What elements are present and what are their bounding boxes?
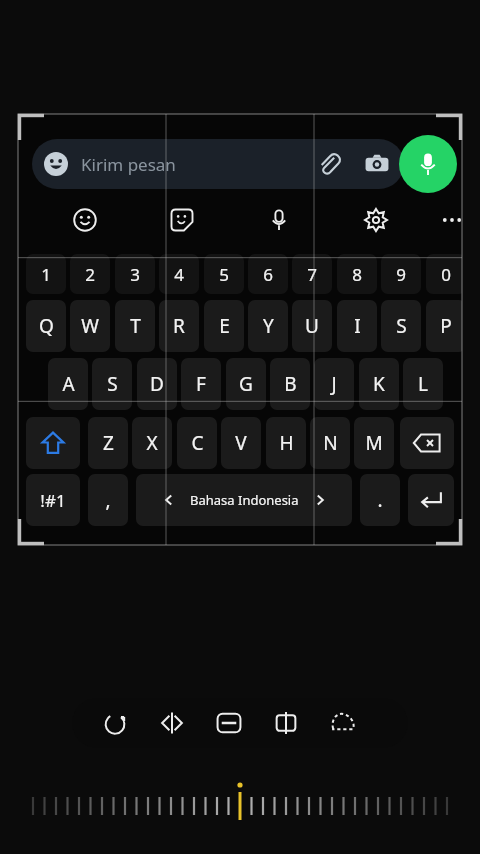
- staticText: Bahasa Indonesia: [190, 491, 299, 509]
- button[interactable]: 5: [204, 254, 244, 294]
- staticText: F: [196, 371, 206, 397]
- button[interactable]: 9: [381, 254, 421, 294]
- button[interactable]: M: [354, 417, 394, 469]
- staticText: .: [377, 487, 383, 513]
- staticText: G: [239, 371, 253, 397]
- button[interactable]: Z: [88, 417, 128, 469]
- button[interactable]: .: [360, 474, 400, 526]
- button[interactable]: 4: [159, 254, 199, 294]
- button[interactable]: !#1: [26, 474, 80, 526]
- button[interactable]: Camera: [364, 151, 390, 177]
- staticText: Kirim pesan: [81, 153, 176, 176]
- button[interactable]: S: [381, 300, 421, 352]
- staticText: Z: [103, 430, 114, 456]
- button[interactable]: F: [181, 358, 221, 410]
- staticText: 1: [41, 263, 51, 286]
- staticText: ,: [105, 487, 111, 513]
- button[interactable]: Q: [26, 300, 66, 352]
- staticText: N: [323, 430, 338, 456]
- button[interactable]: Flip vertical: [271, 708, 301, 738]
- button[interactable]: J: [314, 358, 354, 410]
- button[interactable]: S: [92, 358, 132, 410]
- button[interactable]: W: [70, 300, 110, 352]
- button[interactable]: V: [221, 417, 261, 469]
- staticText: S: [107, 371, 118, 397]
- button[interactable]: D: [137, 358, 177, 410]
- button[interactable]: 3: [115, 254, 155, 294]
- button[interactable]: C: [177, 417, 217, 469]
- button[interactable]: Emoji: [67, 202, 103, 238]
- button[interactable]: L: [403, 358, 443, 410]
- staticText: K: [373, 371, 385, 397]
- button[interactable]: Voice: [261, 202, 297, 238]
- button[interactable]: Backspace: [400, 417, 454, 469]
- button[interactable]: Rotate: [100, 708, 130, 738]
- button[interactable]: G: [226, 358, 266, 410]
- button[interactable]: H: [266, 417, 306, 469]
- button[interactable]: 2: [70, 254, 110, 294]
- button[interactable]: More: [434, 202, 462, 238]
- staticText: A: [62, 371, 75, 397]
- staticText: V: [235, 430, 247, 456]
- button[interactable]: Stickers: [164, 202, 200, 238]
- staticText: I: [354, 313, 361, 339]
- button[interactable]: T: [115, 300, 155, 352]
- button[interactable]: Shift: [26, 417, 80, 469]
- button[interactable]: ,: [88, 474, 128, 526]
- button[interactable]: 8: [337, 254, 377, 294]
- staticText: D: [150, 371, 164, 397]
- button[interactable]: Flip horizontal: [157, 708, 187, 738]
- staticText: S: [396, 313, 407, 339]
- button[interactable]: 7: [292, 254, 332, 294]
- staticText: 8: [352, 263, 362, 286]
- staticText: Y: [263, 313, 274, 339]
- staticText: W: [81, 313, 99, 339]
- button[interactable]: 0: [426, 254, 462, 294]
- button[interactable]: R: [159, 300, 199, 352]
- button[interactable]: B: [270, 358, 310, 410]
- staticText: R: [173, 313, 185, 339]
- staticText: P: [440, 313, 452, 339]
- button[interactable]: Free aspect: [214, 708, 244, 738]
- button[interactable]: I: [337, 300, 377, 352]
- button[interactable]: Bahasa Indonesia: [136, 474, 352, 526]
- staticText: B: [284, 371, 297, 397]
- staticText: 2: [85, 263, 95, 286]
- button[interactable]: 6: [248, 254, 288, 294]
- staticText: 7: [307, 263, 317, 286]
- button[interactable]: K: [359, 358, 399, 410]
- button[interactable]: Shape: [328, 708, 358, 738]
- staticText: !#1: [40, 489, 66, 512]
- staticText: 5: [219, 263, 229, 286]
- button[interactable]: [0, 780, 480, 830]
- button[interactable]: N: [310, 417, 350, 469]
- staticText: 3: [130, 263, 140, 286]
- button[interactable]: Record voice message: [399, 135, 457, 193]
- staticText: U: [305, 313, 319, 339]
- staticText: H: [279, 430, 294, 456]
- button[interactable]: Enter: [408, 474, 454, 526]
- button[interactable]: X: [132, 417, 172, 469]
- button[interactable]: Attach: [316, 151, 342, 177]
- button[interactable]: Emoji: [32, 139, 404, 189]
- staticText: 9: [396, 263, 406, 286]
- staticText: J: [331, 371, 337, 397]
- staticText: X: [146, 430, 158, 456]
- staticText: 0: [441, 263, 451, 286]
- button[interactable]: Settings: [358, 202, 394, 238]
- button[interactable]: 1: [26, 254, 66, 294]
- staticText: 4: [174, 263, 184, 286]
- staticText: T: [130, 313, 141, 339]
- staticText: C: [191, 430, 204, 456]
- staticText: 6: [263, 263, 273, 286]
- staticText: E: [219, 313, 230, 339]
- button[interactable]: Y: [248, 300, 288, 352]
- button[interactable]: E: [204, 300, 244, 352]
- button[interactable]: A: [48, 358, 88, 410]
- button[interactable]: Emoji: [43, 151, 69, 177]
- button[interactable]: U: [292, 300, 332, 352]
- staticText: L: [418, 371, 428, 397]
- staticText: Q: [39, 313, 54, 339]
- staticText: M: [365, 430, 383, 456]
- button[interactable]: P: [426, 300, 462, 352]
